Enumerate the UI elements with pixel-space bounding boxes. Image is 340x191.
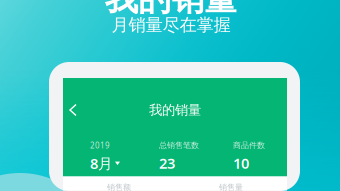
staticText: 销售量 [219,182,243,191]
button[interactable]: Back [63,98,83,121]
staticText: 23 [159,153,175,173]
button[interactable]: 销售量 [175,176,287,191]
staticText: 总销售笔数 [159,140,199,150]
staticText: 我的销量 [105,0,237,19]
staticText: 2019 [90,140,110,151]
staticText: 月销量尽在掌握 [111,14,230,36]
button[interactable]: 销售额 [63,176,175,191]
button[interactable]: 2019 [90,140,159,173]
staticText: 10 [233,153,249,173]
staticText: 我的销量 [149,102,201,118]
staticText: 销售额 [107,182,131,191]
staticText: 商品件数 [233,140,265,150]
staticText: 8月 [90,154,113,173]
